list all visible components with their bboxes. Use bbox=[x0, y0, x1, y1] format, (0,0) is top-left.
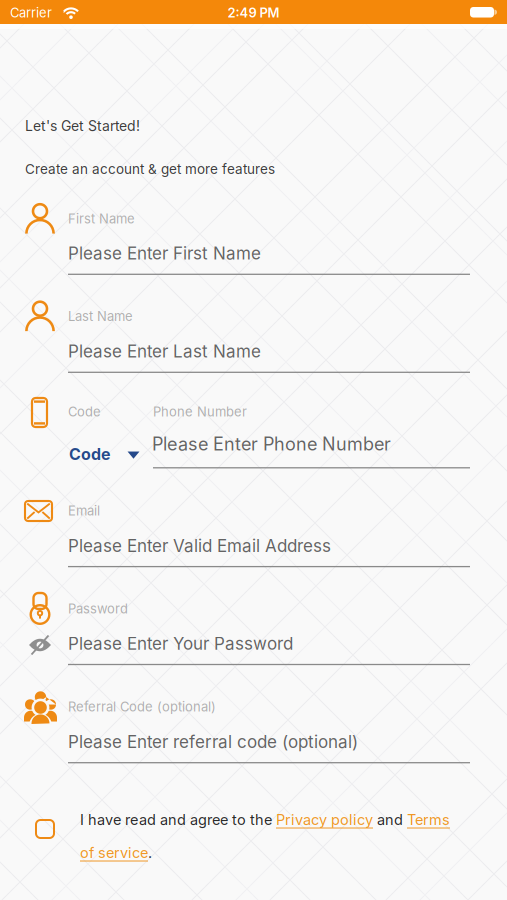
button[interactable]: Please Enter First Name bbox=[68, 243, 261, 264]
staticText: Privacy policy bbox=[276, 811, 373, 828]
staticText: Password bbox=[68, 601, 128, 617]
staticText: of service bbox=[80, 844, 148, 861]
staticText: Create an account & get more features bbox=[25, 161, 275, 177]
staticText: Terms bbox=[407, 811, 450, 828]
button[interactable]: Code bbox=[69, 444, 140, 464]
button[interactable]: I agree to the terms bbox=[36, 820, 54, 838]
button[interactable]: Please Enter Last Name bbox=[68, 341, 261, 362]
button[interactable]: Show password bbox=[28, 637, 52, 654]
staticText: Code bbox=[68, 404, 101, 420]
button[interactable]: Please Enter Valid Email Address bbox=[68, 535, 331, 556]
staticText: Let's Get Started! bbox=[25, 117, 140, 134]
staticText: and bbox=[373, 811, 407, 828]
staticText: Carrier bbox=[10, 5, 52, 21]
staticText: Code bbox=[69, 444, 111, 464]
staticText: Please Enter Your Password bbox=[68, 633, 293, 654]
button[interactable]: Please Enter Phone Number bbox=[152, 433, 391, 455]
staticText: First Name bbox=[68, 211, 135, 227]
button[interactable]: Privacy policy bbox=[276, 811, 373, 828]
staticText: Referral Code (optional) bbox=[68, 699, 216, 715]
button[interactable]: of service bbox=[80, 844, 148, 861]
staticText: Please Enter Phone Number bbox=[152, 433, 391, 455]
button[interactable]: Please Enter referral code (optional) bbox=[68, 731, 358, 752]
staticText: Last Name bbox=[68, 308, 133, 324]
staticText: 2:49 PM bbox=[227, 5, 279, 21]
staticText: Please Enter First Name bbox=[68, 243, 261, 264]
staticText: . bbox=[148, 844, 152, 861]
button[interactable]: Terms bbox=[407, 811, 450, 828]
staticText: Phone Number bbox=[153, 404, 247, 420]
staticText: Please Enter Last Name bbox=[68, 341, 261, 362]
button[interactable]: Please Enter Your Password bbox=[68, 633, 293, 654]
staticText: Email bbox=[68, 503, 100, 519]
staticText: Please Enter Valid Email Address bbox=[68, 535, 331, 556]
staticText: Please Enter referral code (optional) bbox=[68, 731, 358, 752]
staticText: I have read and agree to the bbox=[80, 811, 276, 828]
